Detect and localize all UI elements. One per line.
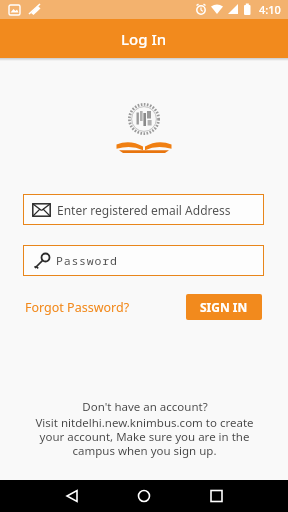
staticText: Don't have an account? [82,399,208,415]
staticText: Visit nitdelhi.new.knimbus.com to create… [35,415,254,458]
button[interactable] [96,480,192,512]
staticText: 4:10 [259,2,281,17]
button[interactable] [0,480,96,512]
button[interactable]: SIGN IN [186,294,262,320]
button[interactable] [192,480,288,512]
staticText: Log In [121,29,167,49]
staticText: Forgot Password? [25,299,130,316]
button[interactable]: Forgot Password? [25,299,130,316]
staticText: Enter registered email Address [57,202,231,218]
staticText: SIGN IN [200,299,248,315]
button[interactable]: Password [23,245,264,276]
staticText: Password [56,253,118,269]
button[interactable]: Enter registered email Address [23,194,264,225]
